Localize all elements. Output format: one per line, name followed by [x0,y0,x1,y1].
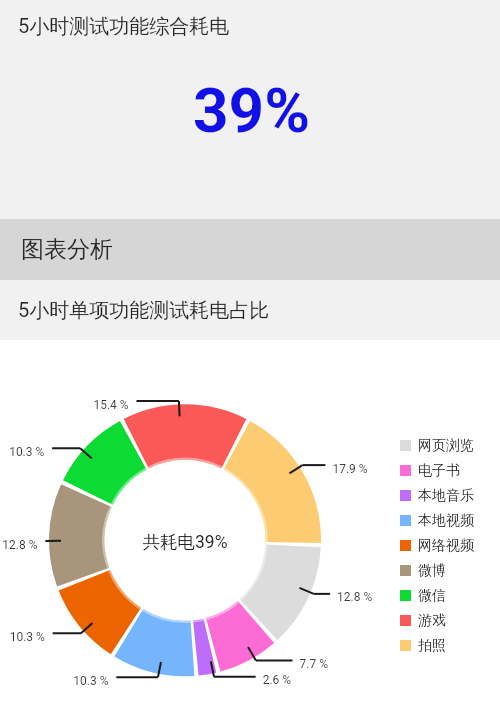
staticText: 微信 [418,587,446,605]
staticText: 网页浏览 [418,437,474,455]
staticText: 网络视频 [418,537,474,555]
staticText: 拍照 [418,637,446,655]
button[interactable]: 微信 [390,583,500,608]
button[interactable]: 微博 [390,558,500,583]
button[interactable]: 游戏 [390,608,500,633]
button[interactable]: 网络视频 [390,533,500,558]
staticText: 游戏 [418,612,446,630]
staticText: 微博 [418,562,446,580]
button[interactable]: 本地音乐 [390,483,500,508]
button[interactable]: 图表分析 [0,219,500,280]
button[interactable]: 5小时单项功能测试耗电占比 [0,280,500,340]
button[interactable]: 网页浏览 [390,433,500,458]
button[interactable]: 拍照 [390,633,500,658]
staticText: 电子书 [418,462,460,480]
staticText: 图表分析 [21,235,113,264]
button[interactable]: 5小时测试功能综合耗电 [0,0,500,219]
button[interactable]: 耗电占比圆环图 [0,340,390,727]
staticText: 5小时单项功能测试耗电占比 [18,298,270,323]
staticText: 本地音乐 [418,487,474,505]
button[interactable]: 本地视频 [390,508,500,533]
staticText: 5小时测试功能综合耗电 [18,14,230,39]
staticText: 本地视频 [418,512,474,530]
staticText: 39% [193,74,310,147]
button[interactable]: 电子书 [390,458,500,483]
